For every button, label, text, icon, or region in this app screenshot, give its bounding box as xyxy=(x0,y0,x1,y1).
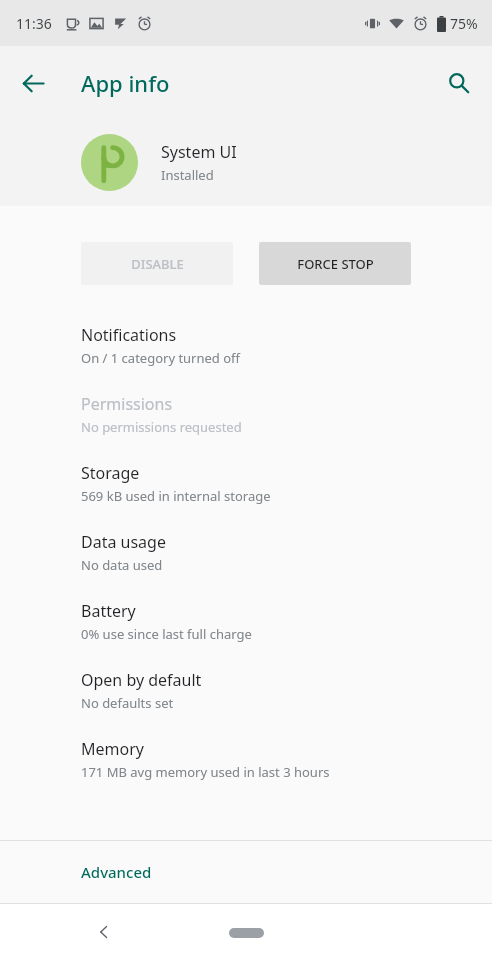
staticText: No defaults set xyxy=(81,694,174,712)
staticText: 171 MB avg memory used in last 3 hours xyxy=(81,763,330,781)
button[interactable]: Memory xyxy=(0,725,492,794)
staticText: No data used xyxy=(81,556,163,574)
button[interactable]: Advanced xyxy=(0,841,492,903)
button[interactable]: Notifications xyxy=(0,311,492,380)
staticText: Memory xyxy=(81,738,144,760)
button[interactable]: Storage xyxy=(0,449,492,518)
staticText: 11:36 xyxy=(16,14,52,33)
staticText: System UI xyxy=(161,141,237,163)
staticText: DISABLE xyxy=(131,255,184,273)
button[interactable]: Open by default xyxy=(0,656,492,725)
button[interactable]: Data usage xyxy=(0,518,492,587)
staticText: 75% xyxy=(450,14,478,33)
staticText: Storage xyxy=(81,462,140,484)
staticText: App info xyxy=(81,68,170,98)
button[interactable]: Back xyxy=(82,910,126,954)
button[interactable]: DISABLE xyxy=(81,242,233,285)
staticText: On / 1 category turned off xyxy=(81,349,241,367)
button[interactable]: System UI xyxy=(0,120,492,204)
staticText: Data usage xyxy=(81,531,166,553)
button[interactable]: Home xyxy=(229,928,264,938)
button[interactable]: Search xyxy=(435,59,483,107)
staticText: 0% use since last full charge xyxy=(81,625,252,643)
button[interactable]: Back xyxy=(9,59,57,107)
staticText: 569 kB used in internal storage xyxy=(81,487,271,505)
staticText: No permissions requested xyxy=(81,418,242,436)
button[interactable]: Permissions xyxy=(0,380,492,449)
staticText: Installed xyxy=(161,166,214,184)
staticText: Battery xyxy=(81,600,136,622)
staticText: Notifications xyxy=(81,324,177,346)
staticText: Open by default xyxy=(81,669,202,691)
button[interactable]: FORCE STOP xyxy=(259,242,411,285)
staticText: Advanced xyxy=(81,862,152,882)
staticText: FORCE STOP xyxy=(297,255,374,273)
button[interactable]: Battery xyxy=(0,587,492,656)
staticText: Permissions xyxy=(81,393,173,415)
